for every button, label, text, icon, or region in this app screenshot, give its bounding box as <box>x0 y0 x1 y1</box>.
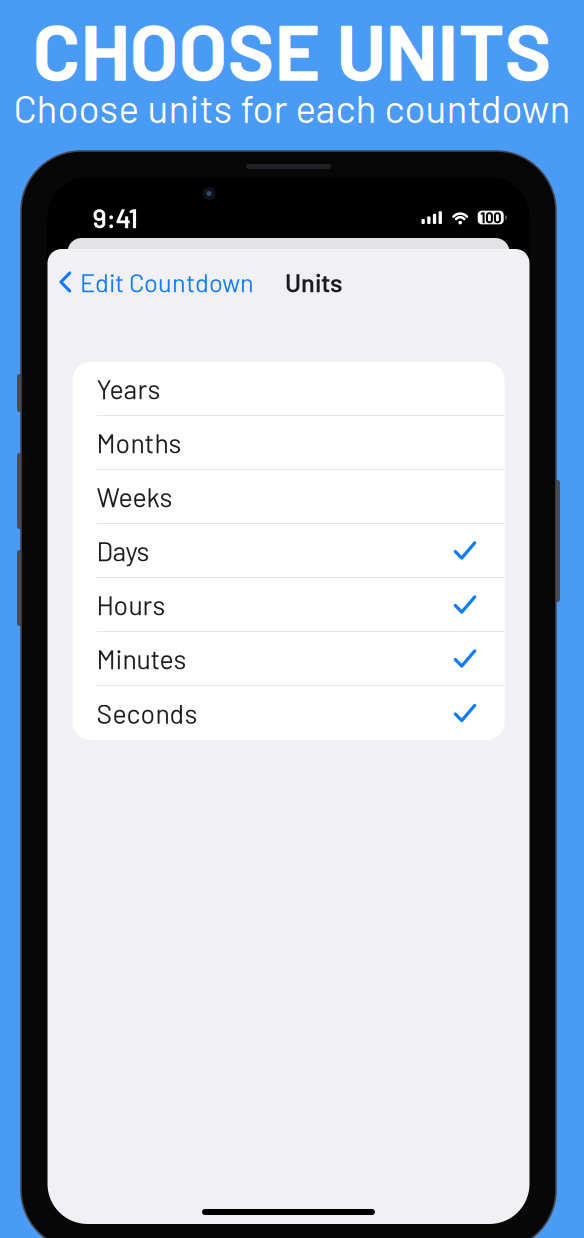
button[interactable]: Hours <box>72 578 504 632</box>
staticText: Edit Countdown <box>80 267 254 297</box>
button[interactable]: Seconds <box>72 686 504 740</box>
staticText: Units <box>285 267 342 297</box>
staticText: Choose units for each countdown <box>13 84 570 131</box>
staticText: Seconds <box>96 697 197 729</box>
button[interactable]: Days <box>72 524 504 578</box>
staticText: Hours <box>96 588 165 620</box>
staticText: Days <box>96 534 149 566</box>
staticText: Weeks <box>96 480 172 512</box>
staticText: Minutes <box>96 642 186 674</box>
staticText: CHOOSE UNITS <box>32 2 551 96</box>
staticText: 9:41 <box>92 201 137 233</box>
button[interactable]: Minutes <box>72 632 504 686</box>
staticText: Years <box>96 372 160 404</box>
staticText: Months <box>96 426 181 458</box>
button[interactable]: Edit Countdown <box>47 261 258 303</box>
button[interactable]: Months <box>72 416 504 470</box>
button[interactable]: Years <box>72 362 504 416</box>
button[interactable]: Weeks <box>72 470 504 524</box>
staticText: 100 <box>480 209 501 226</box>
